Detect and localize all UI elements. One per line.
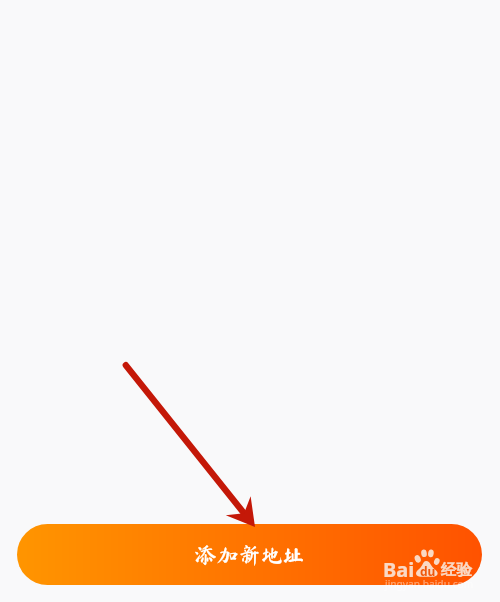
staticText: Bai	[383, 556, 415, 583]
staticText: 经验	[441, 560, 472, 580]
button[interactable]: 添加新地址	[17, 524, 482, 585]
staticText: du	[420, 563, 436, 579]
staticText: 添加新地址	[194, 544, 305, 566]
staticText: jingyan.baidu.com	[385, 577, 474, 591]
